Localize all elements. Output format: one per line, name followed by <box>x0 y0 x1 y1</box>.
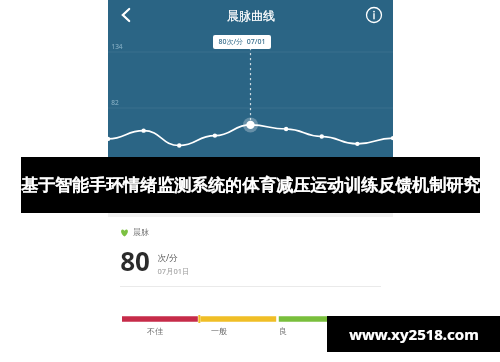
staticText: 29 <box>111 156 119 165</box>
button[interactable]: 06/28 <box>191 195 231 217</box>
button[interactable]: 07/02 <box>271 195 311 217</box>
button[interactable]: Back <box>112 1 140 29</box>
staticText: 一般 <box>211 326 227 336</box>
button[interactable]: 06/23 <box>110 195 151 217</box>
button[interactable]: 优 <box>315 326 379 336</box>
button[interactable]: Info <box>361 2 387 28</box>
staticText: 晨脉 <box>133 227 149 237</box>
button[interactable]: 一般 <box>187 326 251 336</box>
staticText: 80次/分 07/01 <box>218 37 266 47</box>
staticText: www.xy2518.com <box>349 324 479 344</box>
staticText: 优 <box>343 326 351 336</box>
staticText: 晨脉曲线 <box>227 8 275 23</box>
button[interactable]: 07/01 <box>231 195 271 217</box>
staticText: 07月01日 <box>157 266 190 276</box>
staticText: 134 <box>111 42 123 51</box>
button[interactable]: 06/27 <box>151 195 191 217</box>
staticText: 不佳 <box>147 326 163 336</box>
staticText: 基于智能手环情绪监测系统的体育减压运动训练反馈机制研究 <box>21 175 480 196</box>
staticText: 82 <box>111 98 119 107</box>
button[interactable]: 不佳 <box>122 326 187 336</box>
staticText: 80 <box>120 243 150 278</box>
staticText: 良 <box>279 326 287 336</box>
button[interactable]: 07/04 <box>351 195 391 217</box>
button[interactable]: 良 <box>251 326 315 336</box>
staticText: 次/分 <box>157 252 178 264</box>
button[interactable]: 07/03 <box>311 195 351 217</box>
